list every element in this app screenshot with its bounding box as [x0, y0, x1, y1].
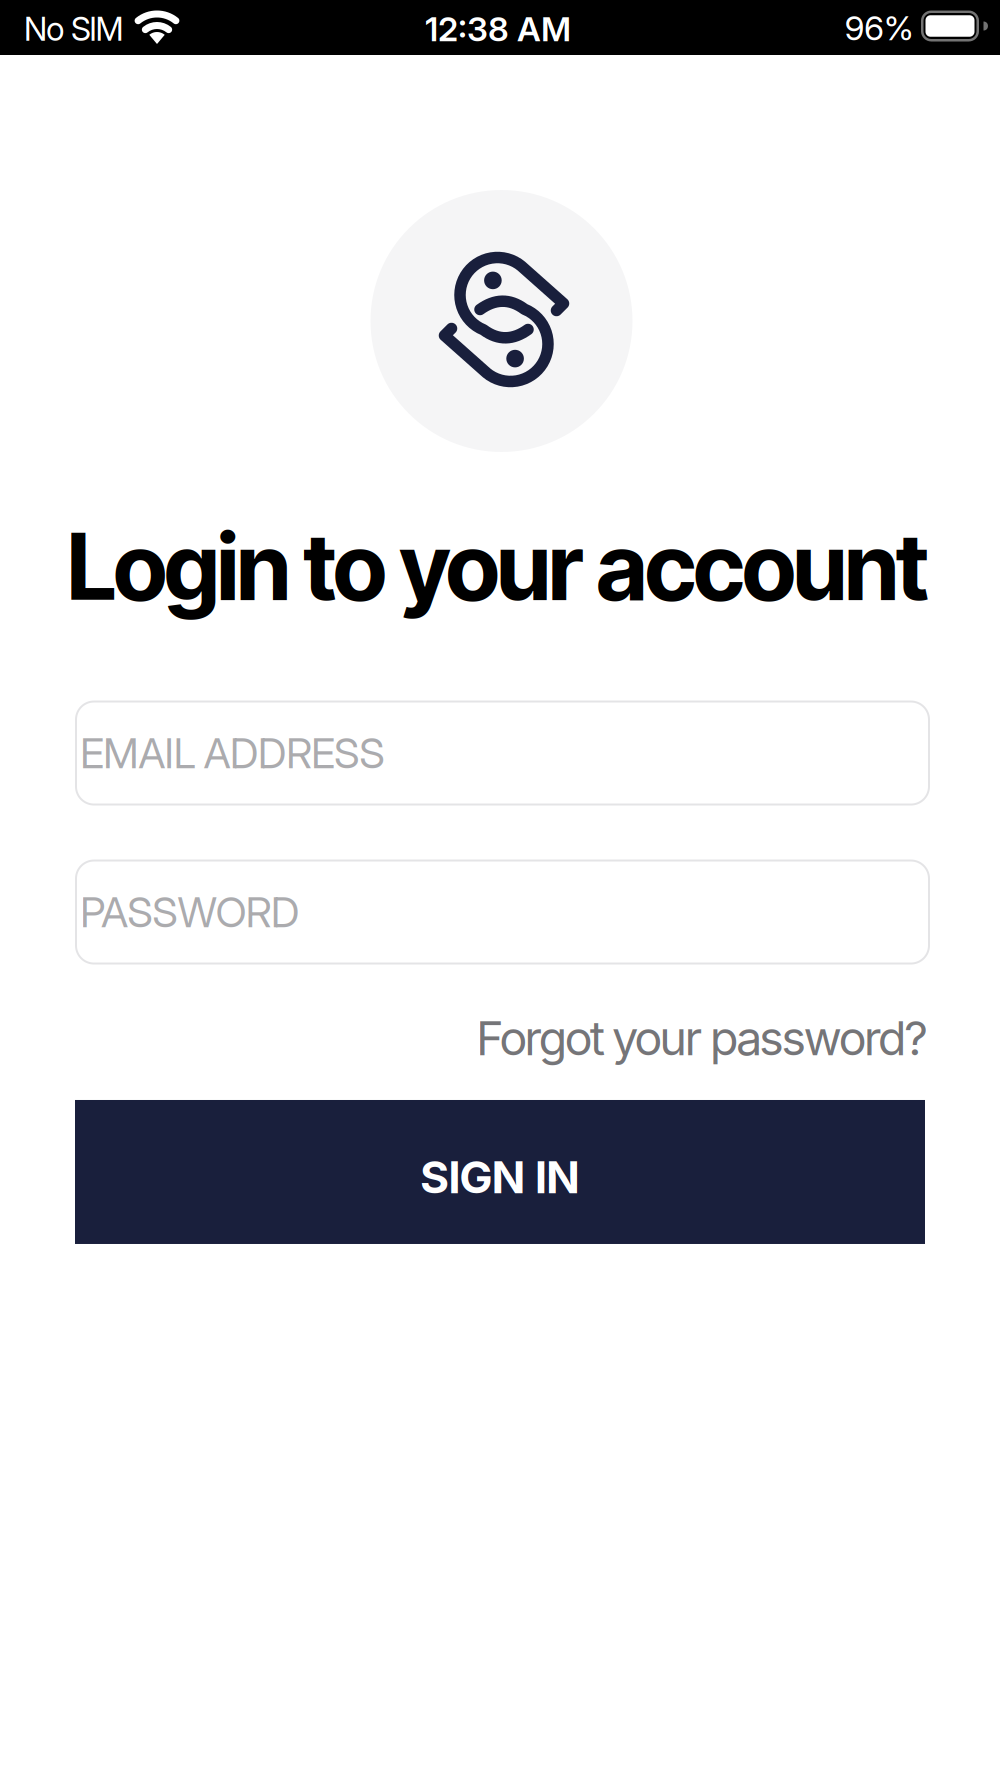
staticText: SIGN IN — [420, 1151, 580, 1203]
staticText: PASSWORD — [80, 888, 300, 937]
staticText: 12:38 AM — [425, 9, 571, 49]
button[interactable]: SIGN IN — [75, 1100, 925, 1244]
button[interactable]: Forgot your password? — [476, 1010, 928, 1066]
staticText: No SIM — [24, 10, 124, 48]
staticText: Forgot your password? — [476, 1010, 928, 1066]
staticText: EMAIL ADDRESS — [80, 729, 385, 778]
button[interactable]: PASSWORD — [75, 859, 930, 964]
staticText: Login to your account — [67, 512, 929, 620]
staticText: 96% — [844, 8, 914, 48]
button[interactable]: EMAIL ADDRESS — [75, 700, 930, 805]
